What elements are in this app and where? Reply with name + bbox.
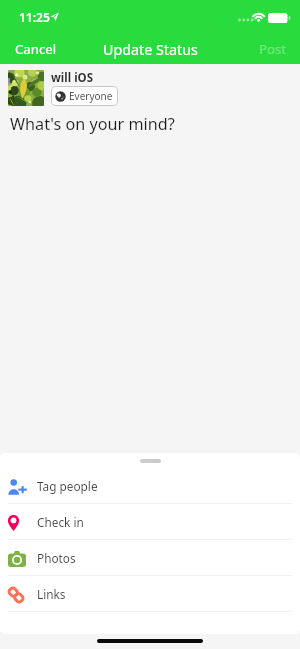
staticText: 11:25	[19, 9, 50, 25]
other: Tag people	[8, 479, 27, 495]
other: Links	[8, 587, 24, 603]
button[interactable]: Cancel	[0, 33, 71, 65]
staticText: Tag people	[37, 478, 98, 494]
button[interactable]: Photos	[0, 540, 300, 576]
staticText: Update Status	[103, 40, 198, 59]
other: Check in	[8, 515, 19, 531]
other: Photos	[8, 551, 26, 567]
staticText: will iOS	[51, 70, 93, 86]
button[interactable]: Check in	[0, 504, 300, 540]
staticText: Post	[259, 40, 287, 58]
staticText: Everyone	[69, 89, 113, 103]
staticText: Cancel	[15, 40, 57, 58]
button[interactable]: Links	[0, 576, 300, 612]
staticText: What's on your mind?	[10, 113, 175, 135]
button[interactable]: Post	[245, 33, 300, 65]
staticText: Check in	[37, 514, 84, 530]
button[interactable]: Tag people	[0, 468, 300, 504]
button[interactable]: Everyone	[51, 86, 118, 106]
staticText: Photos	[37, 550, 76, 566]
staticText: Links	[37, 586, 66, 602]
